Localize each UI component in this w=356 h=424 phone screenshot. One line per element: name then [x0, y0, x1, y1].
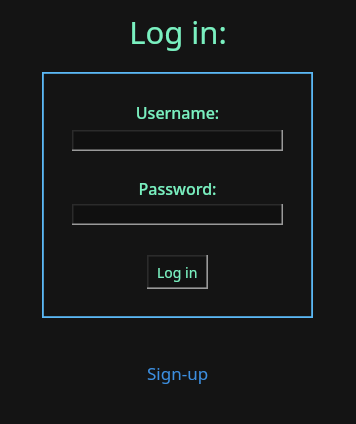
staticText: Log in: [0, 11, 356, 53]
staticText: Log in [157, 263, 198, 282]
button[interactable]: Sign-up [130, 358, 226, 388]
button[interactable] [72, 130, 283, 151]
staticText: Password: [42, 178, 313, 200]
button[interactable] [72, 204, 283, 225]
staticText: Username: [42, 102, 313, 124]
button[interactable]: Log in [147, 255, 208, 289]
staticText: Sign-up [147, 362, 209, 385]
